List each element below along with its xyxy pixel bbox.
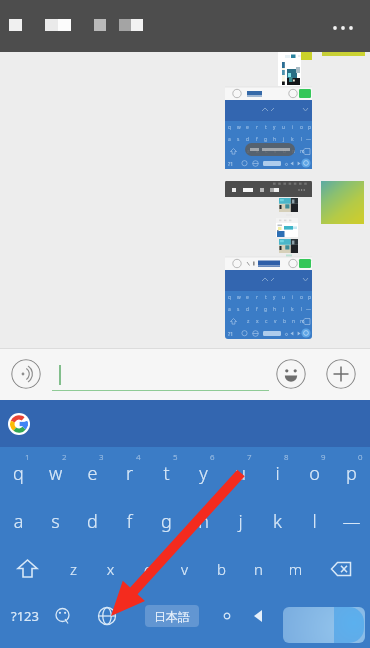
staticText: c: [129, 559, 166, 607]
button[interactable]: q: [0, 448, 37, 496]
staticText: j: [283, 306, 285, 313]
button[interactable]: More functions: [326, 359, 356, 389]
staticText: l: [296, 509, 333, 557]
button[interactable]: Google: [8, 413, 30, 435]
staticText: b: [203, 559, 240, 607]
staticText: 9: [321, 451, 326, 462]
button[interactable]: x: [92, 544, 129, 592]
button[interactable]: Change language: [90, 592, 124, 640]
button[interactable]: r: [111, 448, 148, 496]
staticText: h: [273, 306, 276, 313]
staticText: y: [185, 461, 222, 486]
button[interactable]: c: [129, 544, 166, 592]
staticText: v: [274, 318, 277, 325]
button[interactable]: i: [259, 448, 296, 496]
staticText: q: [0, 461, 37, 486]
button[interactable]: Voice message: [11, 359, 41, 389]
staticText: n: [292, 318, 295, 325]
staticText: y: [273, 294, 276, 301]
staticText: a: [228, 306, 231, 313]
staticText: u: [282, 124, 285, 131]
staticText: s: [237, 306, 240, 313]
staticText: i: [292, 124, 294, 131]
staticText: u: [282, 294, 285, 301]
staticText: f: [256, 136, 258, 143]
button[interactable]: Period: [210, 592, 244, 640]
button[interactable]: t: [148, 448, 185, 496]
staticText: 1: [25, 451, 30, 462]
staticText: —: [333, 509, 370, 557]
staticText: e: [74, 461, 111, 486]
staticText: 2: [62, 451, 67, 462]
button[interactable]: o: [296, 448, 333, 496]
button[interactable]: p: [333, 448, 370, 496]
button[interactable]: u: [222, 448, 259, 496]
staticText: c: [265, 148, 268, 155]
button[interactable]: n: [240, 544, 277, 592]
button[interactable]: Backspace: [323, 544, 360, 592]
button[interactable]: g: [148, 496, 185, 544]
staticText: q: [228, 294, 231, 301]
button[interactable]: ?123: [4, 592, 46, 640]
staticText: z: [55, 559, 92, 607]
staticText: —: [306, 136, 312, 143]
staticText: r: [111, 461, 148, 486]
staticText: p: [308, 124, 311, 131]
button[interactable]: —: [333, 496, 370, 544]
staticText: ?1: [228, 161, 234, 168]
staticText: 3: [99, 451, 104, 462]
button[interactable]: z: [55, 544, 92, 592]
button[interactable]: e: [74, 448, 111, 496]
staticText: w: [37, 461, 74, 486]
button[interactable]: a: [0, 496, 37, 544]
button[interactable]: s: [37, 496, 74, 544]
staticText: m: [300, 318, 305, 325]
button[interactable]: d: [74, 496, 111, 544]
staticText: 5: [173, 451, 178, 462]
button[interactable]: 日本語: [145, 605, 199, 627]
staticText: h: [185, 509, 222, 557]
staticText: i: [292, 294, 294, 301]
staticText: u: [222, 461, 259, 486]
staticText: l: [301, 136, 303, 143]
staticText: p: [308, 294, 311, 301]
staticText: m: [277, 559, 314, 607]
button[interactable]: b: [203, 544, 240, 592]
staticText: x: [256, 148, 259, 155]
staticText: ?1: [228, 331, 234, 338]
staticText: j: [222, 509, 259, 557]
staticText: y: [273, 124, 276, 131]
staticText: a: [0, 509, 37, 557]
button[interactable]: Emoji: [46, 592, 79, 640]
staticText: x: [92, 559, 129, 607]
button[interactable]: j: [222, 496, 259, 544]
button[interactable]: f: [111, 496, 148, 544]
button[interactable]: Previous: [244, 592, 274, 640]
button[interactable]: m: [277, 544, 314, 592]
staticText: 0: [358, 451, 363, 462]
staticText: z: [247, 148, 250, 155]
button[interactable]: w: [37, 448, 74, 496]
staticText: j: [283, 136, 285, 143]
button[interactable]: l: [296, 496, 333, 544]
staticText: o: [296, 461, 333, 486]
staticText: f: [111, 509, 148, 557]
staticText: b: [283, 148, 286, 155]
staticText: d: [246, 136, 249, 143]
button[interactable]: Shift: [9, 544, 46, 592]
button[interactable]: More options: [322, 10, 364, 44]
staticText: 4: [136, 451, 141, 462]
button[interactable]: h: [185, 496, 222, 544]
button[interactable]: y: [185, 448, 222, 496]
button[interactable]: Emoji: [276, 359, 306, 389]
button[interactable]: v: [166, 544, 203, 592]
staticText: l: [301, 306, 303, 313]
staticText: r: [256, 294, 258, 301]
staticText: e: [246, 124, 249, 131]
staticText: a: [228, 136, 231, 143]
staticText: 7: [247, 451, 252, 462]
staticText: d: [246, 306, 249, 313]
staticText: f: [256, 306, 258, 313]
staticText: g: [264, 136, 267, 143]
button[interactable]: k: [259, 496, 296, 544]
